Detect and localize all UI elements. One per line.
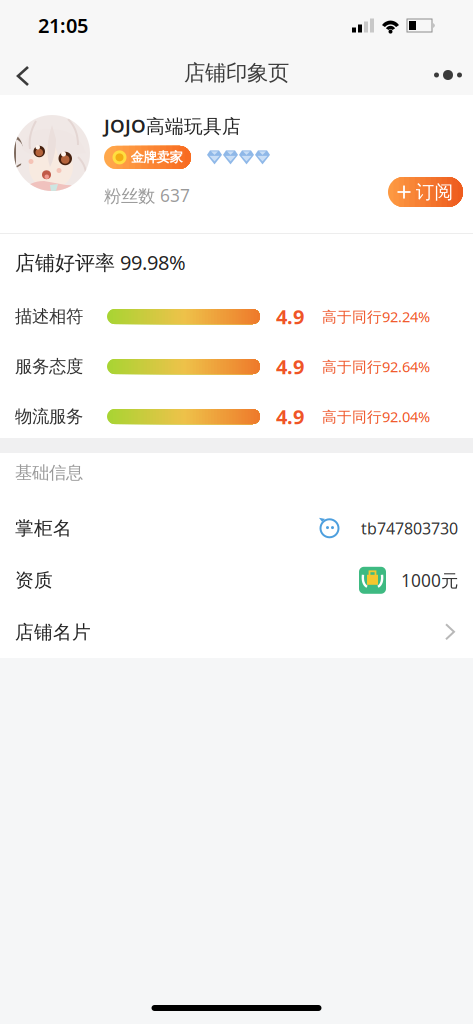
staticText: 基础信息 xyxy=(15,462,83,483)
staticText: 高于同行92.64% xyxy=(322,357,430,376)
staticText: 金牌卖家 xyxy=(130,149,182,166)
staticText: 粉丝数 637 xyxy=(104,184,190,207)
staticText: 4.9 xyxy=(276,403,304,430)
staticText: 1000元 xyxy=(401,569,458,592)
button[interactable] xyxy=(0,45,462,83)
button[interactable]: 掌柜名 xyxy=(0,502,473,554)
button[interactable]: 资质 xyxy=(0,554,473,606)
staticText: 店铺好评率 99.98% xyxy=(15,249,186,276)
staticText: JOJO高端玩具店 xyxy=(104,113,241,138)
staticText: 物流服务 xyxy=(15,406,83,427)
staticText: 描述相符 xyxy=(15,306,83,327)
button[interactable]: 店铺名片 xyxy=(0,606,473,658)
staticText: 店铺印象页 xyxy=(184,60,289,86)
staticText: 高于同行92.04% xyxy=(322,407,430,426)
staticText: 店铺名片 xyxy=(15,621,91,644)
button[interactable] xyxy=(0,45,32,87)
staticText: 4.9 xyxy=(276,353,304,380)
staticText: 资质 xyxy=(15,569,53,592)
staticText: tb747803730 xyxy=(361,518,458,539)
staticText: 4.9 xyxy=(276,303,304,330)
staticText: 21:05 xyxy=(38,12,88,39)
button[interactable]: 订阅 xyxy=(388,177,463,207)
staticText: 掌柜名 xyxy=(15,517,72,540)
staticText: 服务态度 xyxy=(15,356,83,377)
staticText: 订阅 xyxy=(415,180,453,203)
staticText: 高于同行92.24% xyxy=(322,307,430,326)
